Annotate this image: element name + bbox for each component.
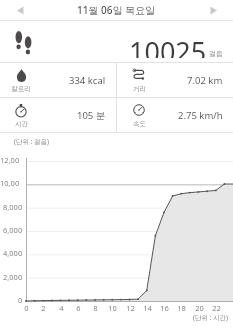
staticText: 8 (93, 303, 98, 313)
staticText: 0 (24, 303, 29, 313)
staticText: 걸음 (209, 49, 223, 58)
button[interactable]: Previous day (13, 3, 29, 18)
staticText: 16 (160, 303, 169, 313)
staticText: 12 (126, 303, 135, 313)
staticText: 4,000 (3, 248, 23, 258)
staticText: 7.02 km (187, 74, 223, 86)
staticText: 4 (59, 303, 64, 313)
staticText: 14 (143, 303, 152, 313)
button[interactable] (0, 21, 233, 62)
other: Speed (133, 104, 145, 116)
button[interactable]: Next day (205, 3, 221, 18)
staticText: 12,000 (0, 155, 23, 165)
staticText: 6,000 (3, 225, 23, 235)
staticText: 22 (212, 303, 221, 313)
staticText: 334 kcal (69, 74, 106, 86)
staticText: 속도 (133, 120, 146, 128)
staticText: (단위 : 시간) (193, 313, 229, 322)
staticText: 20 (195, 303, 204, 313)
staticText: 2,000 (3, 272, 23, 282)
staticText: 10025 (129, 33, 207, 58)
staticText: 105 분 (77, 109, 106, 121)
staticText: 2 (41, 303, 46, 313)
staticText: 10,000 (0, 178, 23, 188)
staticText: 시간 (15, 120, 28, 128)
staticText: 10 (108, 303, 117, 313)
staticText: 6 (76, 303, 81, 313)
button[interactable]: Calories (0, 63, 116, 97)
button[interactable]: Speed (116, 98, 233, 132)
other: Duration (15, 104, 27, 117)
staticText: 거리 (133, 85, 146, 93)
other: Steps (15, 31, 33, 56)
other: Calories (16, 69, 27, 82)
staticText: 11월 06일 목요일 (77, 3, 156, 17)
staticText: 2.75 km/h (178, 109, 223, 121)
other: Distance (132, 69, 146, 80)
staticText: (단위 : 걸음) (14, 137, 50, 146)
button[interactable]: Distance (116, 63, 233, 97)
button[interactable]: Duration (0, 98, 116, 132)
staticText: 0 (18, 295, 23, 305)
button[interactable]: (단위 : 걸음) (0, 134, 233, 328)
button[interactable]: 11월 06일 목요일 (0, 0, 233, 20)
staticText: 18 (177, 303, 186, 313)
staticText: 8,000 (3, 202, 23, 212)
staticText: 칼로리 (11, 85, 31, 93)
